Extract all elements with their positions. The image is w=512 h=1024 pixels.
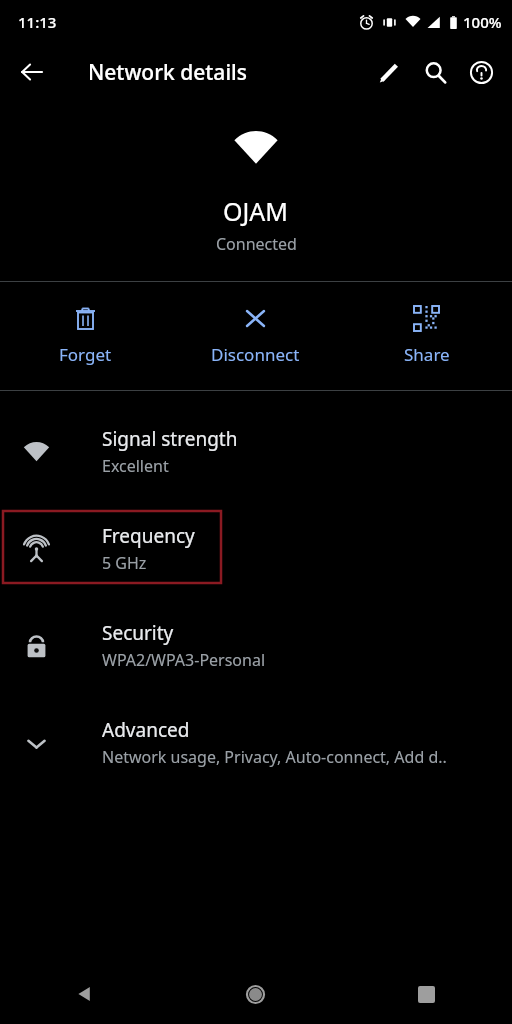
staticText: Excellent xyxy=(102,455,169,477)
staticText: Share xyxy=(404,343,450,366)
button[interactable]: Share xyxy=(341,282,512,390)
button[interactable]: Edit xyxy=(366,49,412,95)
staticText: OJAM xyxy=(223,194,289,228)
button[interactable]: Recents xyxy=(341,964,512,1024)
staticText: Disconnect xyxy=(211,343,300,366)
staticText: Connected xyxy=(216,233,297,255)
button[interactable]: Back xyxy=(0,964,170,1024)
staticText: Network usage, Privacy, Auto-connect, Ad… xyxy=(102,746,447,768)
button[interactable]: Help xyxy=(458,49,504,95)
staticText: 5 GHz xyxy=(102,552,147,574)
staticText: 11:13 xyxy=(18,12,57,32)
button[interactable]: Disconnect xyxy=(170,282,341,390)
staticText: Frequency xyxy=(102,523,195,549)
button[interactable]: Back xyxy=(8,48,56,96)
button[interactable]: Advanced xyxy=(0,694,512,791)
button[interactable]: Forget xyxy=(0,282,170,390)
staticText: Network details xyxy=(88,58,247,87)
button[interactable]: Security xyxy=(0,597,512,694)
staticText: Advanced xyxy=(102,717,190,743)
staticText: WPA2/WPA3-Personal xyxy=(102,649,266,671)
staticText: Signal strength xyxy=(102,426,238,452)
staticText: Security xyxy=(102,620,174,646)
button[interactable]: Home xyxy=(170,964,341,1024)
button[interactable]: Search xyxy=(412,49,458,95)
staticText: Forget xyxy=(59,343,112,366)
staticText: 100% xyxy=(463,12,502,32)
button[interactable]: Signal strength xyxy=(0,403,512,500)
button[interactable]: Frequency xyxy=(0,500,512,597)
